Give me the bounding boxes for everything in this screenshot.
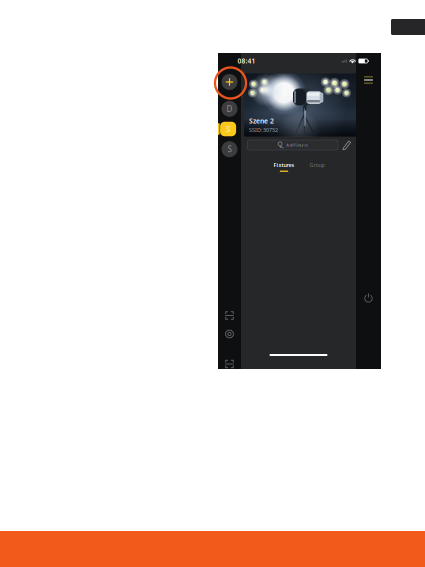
button[interactable]: Menu [356, 75, 381, 85]
button[interactable]: Add scene [218, 72, 241, 92]
staticText: SSID: 30752 [249, 126, 278, 133]
staticText: Add Fixtures [286, 142, 308, 148]
button[interactable]: S [218, 139, 241, 159]
button[interactable]: Group [304, 161, 330, 172]
button[interactable]: Scan [218, 306, 241, 324]
staticText: Szene 2 [249, 117, 274, 125]
button[interactable]: Scan QR code [218, 359, 241, 369]
button[interactable]: Fixtures [271, 161, 297, 172]
button[interactable]: Add Fixtures [247, 140, 338, 150]
button[interactable]: S [218, 119, 241, 139]
button[interactable]: Edit scene [342, 139, 352, 150]
staticText: S [226, 124, 230, 134]
button[interactable]: D [218, 99, 241, 119]
staticText: Group [309, 161, 324, 169]
staticText: D [226, 103, 232, 114]
staticText: S [227, 144, 231, 154]
staticText: Fixtures [273, 161, 294, 169]
button[interactable]: Settings [218, 325, 241, 343]
button[interactable]: Power [356, 292, 381, 304]
staticText: 08:41 [237, 57, 255, 65]
